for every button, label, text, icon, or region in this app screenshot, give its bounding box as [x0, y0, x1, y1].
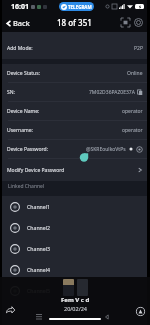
staticText: @SKREoulkoVtPs	[86, 146, 126, 153]
staticText: Username:	[7, 127, 33, 134]
staticText: Fem V c d	[61, 296, 90, 304]
staticText: Channel4	[27, 266, 51, 273]
staticText: 16:01	[11, 2, 29, 12]
staticText: P2P	[134, 45, 143, 52]
staticText: operator	[122, 108, 143, 115]
button[interactable]: Device Name:	[2, 102, 147, 120]
button[interactable]: Share	[4, 304, 16, 316]
button[interactable]: Back	[102, 312, 112, 322]
staticText: Online	[127, 70, 143, 77]
staticText: SN:	[7, 89, 15, 96]
staticText: Device Status:	[7, 70, 41, 77]
button[interactable]: SN:	[2, 83, 147, 101]
staticText: Modify Device Password	[7, 167, 65, 174]
staticText: 18 of 351	[57, 17, 92, 28]
staticText: Linked Channel	[8, 183, 45, 190]
staticText: Channel3	[27, 245, 51, 252]
staticText: operator	[122, 127, 143, 134]
staticText: Channel2	[27, 224, 51, 231]
button[interactable]: Channel3	[2, 238, 147, 259]
staticText: Device Password:	[7, 146, 49, 153]
staticText: Add Mode:	[7, 45, 33, 52]
button[interactable]: Channel2	[2, 217, 147, 238]
button[interactable]: Assistant	[135, 306, 145, 316]
button[interactable]: Device Status:	[2, 64, 147, 82]
staticText: Channel5	[27, 287, 51, 294]
button[interactable]: Username:	[2, 121, 147, 139]
button[interactable]: Recents	[34, 312, 44, 322]
button[interactable]: Add Mode:	[2, 38, 147, 59]
button[interactable]: Back	[2, 18, 35, 28]
button[interactable]: Channel5	[2, 280, 147, 301]
button[interactable]	[63, 279, 74, 296]
staticText: TELEGRAM	[68, 4, 92, 10]
staticText: Device Name:	[7, 108, 40, 115]
staticText: Back	[13, 18, 30, 28]
button[interactable]: Modify Device Password	[2, 159, 147, 181]
button[interactable]: Scan QR code	[120, 17, 131, 28]
button[interactable]: Channel4	[2, 259, 147, 280]
staticText: 7M02D36PAZ0E37A	[89, 89, 135, 96]
staticText: 20/02/24	[64, 305, 87, 312]
staticText: Channel1	[27, 203, 51, 210]
button[interactable]: Device Password:	[2, 140, 147, 158]
button[interactable]: Channel1	[2, 196, 147, 217]
button[interactable]: Settings	[133, 17, 144, 28]
